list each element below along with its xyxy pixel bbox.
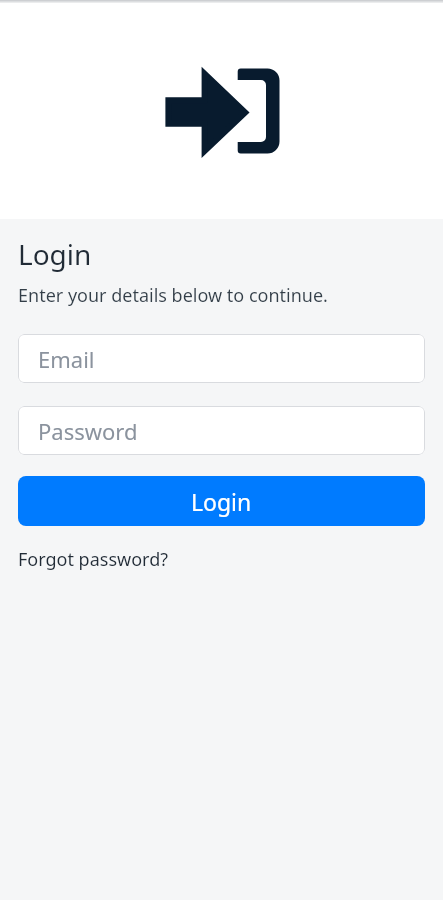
staticText: Forgot password?: [18, 547, 169, 572]
button[interactable]: Forgot password?: [18, 547, 169, 572]
staticText: Login: [18, 235, 92, 273]
button[interactable]: Password: [18, 406, 425, 455]
staticText: Password: [38, 416, 138, 446]
button[interactable]: Login: [18, 476, 425, 526]
staticText: Email: [38, 344, 95, 374]
staticText: Login: [191, 486, 252, 517]
staticText: Enter your details below to continue.: [18, 283, 328, 308]
button[interactable]: Email: [18, 334, 425, 383]
